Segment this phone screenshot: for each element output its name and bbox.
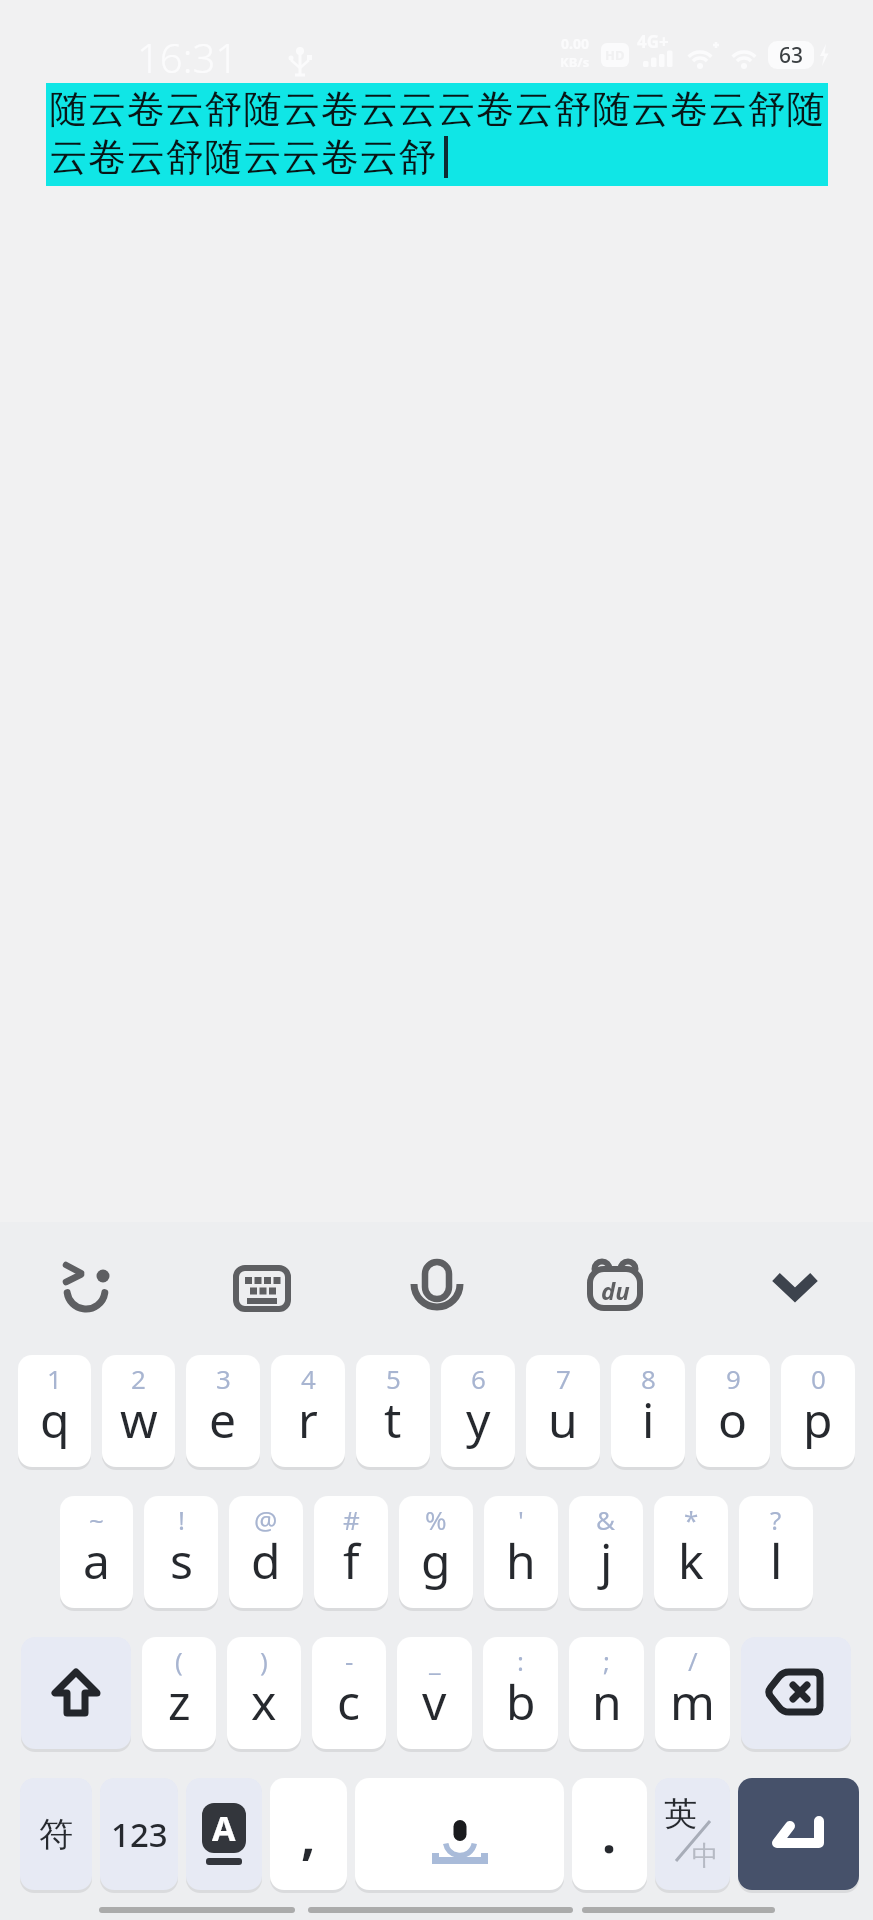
button[interactable]: 英	[655, 1778, 730, 1890]
staticText: *	[684, 1502, 699, 1537]
staticText: t	[384, 1387, 402, 1452]
button[interactable]	[59, 1260, 115, 1316]
staticText: 63	[779, 41, 804, 69]
button[interactable]: 123	[100, 1778, 178, 1890]
button[interactable]: !	[144, 1496, 218, 1608]
staticText: h	[506, 1528, 536, 1593]
staticText: (	[175, 1643, 183, 1678]
staticText: '	[518, 1502, 524, 1537]
staticText: 1	[47, 1361, 62, 1396]
staticText: !	[178, 1502, 185, 1537]
button[interactable]: 7	[526, 1355, 600, 1467]
button[interactable]: '	[484, 1496, 558, 1608]
button[interactable]: 2	[102, 1355, 175, 1467]
button[interactable]	[767, 1260, 823, 1316]
button[interactable]: du	[587, 1260, 643, 1316]
staticText: j	[600, 1528, 613, 1593]
staticText: x	[251, 1669, 277, 1734]
button[interactable]: *	[654, 1496, 728, 1608]
staticText: l	[770, 1528, 783, 1593]
staticText: 4G+	[637, 30, 669, 53]
staticText: du	[601, 1274, 630, 1307]
staticText: @	[254, 1502, 278, 1537]
button[interactable]: 4	[271, 1355, 345, 1467]
staticText: 9	[726, 1361, 741, 1396]
button[interactable]: A	[186, 1778, 262, 1890]
staticText: ~	[89, 1502, 104, 1537]
staticText: &	[596, 1502, 616, 1537]
staticText: v	[422, 1669, 447, 1734]
staticText: 2	[131, 1361, 146, 1396]
staticText: f	[343, 1528, 360, 1593]
staticText: 英	[664, 1793, 697, 1835]
staticText: c	[337, 1669, 361, 1734]
staticText: 0.00	[561, 34, 589, 53]
button[interactable]: 6	[441, 1355, 515, 1467]
button[interactable]: ;	[569, 1637, 644, 1749]
button[interactable]: 0	[781, 1355, 855, 1467]
staticText: i	[642, 1387, 655, 1452]
staticText: z	[168, 1669, 191, 1734]
button[interactable]	[234, 1260, 290, 1316]
staticText: _	[429, 1643, 441, 1678]
staticText: .	[602, 1800, 617, 1868]
button[interactable]: )	[227, 1637, 301, 1749]
button[interactable]	[741, 1637, 851, 1749]
button[interactable]: 9	[696, 1355, 770, 1467]
button[interactable]: %	[399, 1496, 473, 1608]
staticText: 123	[111, 1812, 168, 1857]
staticText: m	[670, 1669, 715, 1734]
button[interactable]: 1	[18, 1355, 91, 1467]
staticText: :	[517, 1643, 524, 1678]
staticText: r	[298, 1387, 318, 1452]
staticText: u	[548, 1387, 578, 1452]
staticText: KB/s	[560, 53, 590, 71]
staticText: 随云卷云舒随云卷云云云卷云舒随云卷云舒随	[49, 85, 825, 133]
staticText: a	[83, 1528, 110, 1593]
staticText: 7	[556, 1361, 571, 1396]
staticText: 5	[386, 1361, 401, 1396]
staticText: y	[466, 1387, 491, 1452]
staticText: g	[421, 1528, 451, 1593]
button[interactable]: &	[569, 1496, 643, 1608]
staticText: %	[425, 1502, 447, 1537]
staticText: 云卷云舒随云云卷云舒	[49, 133, 437, 181]
button[interactable]: ?	[739, 1496, 813, 1608]
staticText: k	[678, 1528, 704, 1593]
button[interactable]	[21, 1637, 131, 1749]
staticText: HD	[605, 46, 625, 64]
staticText: n	[592, 1669, 622, 1734]
button[interactable]: (	[142, 1637, 216, 1749]
staticText: 16:31	[137, 30, 239, 84]
button[interactable]: 3	[186, 1355, 260, 1467]
button[interactable]: ,	[270, 1778, 347, 1890]
staticText: 符	[39, 1813, 73, 1856]
staticText: 0	[811, 1361, 826, 1396]
button[interactable]: @	[229, 1496, 303, 1608]
button[interactable]: 符	[20, 1778, 92, 1890]
button[interactable]: -	[312, 1637, 386, 1749]
button[interactable]	[738, 1778, 859, 1890]
button[interactable]: /	[655, 1637, 730, 1749]
staticText: A	[212, 1805, 236, 1851]
staticText: p	[803, 1387, 833, 1452]
staticText: #	[343, 1502, 360, 1537]
button[interactable]: :	[483, 1637, 558, 1749]
staticText: 6	[471, 1361, 486, 1396]
staticText: -	[345, 1643, 354, 1678]
staticText: s	[170, 1528, 193, 1593]
button[interactable]: ~	[60, 1496, 133, 1608]
staticText: o	[718, 1387, 748, 1452]
staticText: ,	[301, 1802, 316, 1870]
button[interactable]: 5	[356, 1355, 430, 1467]
button[interactable]: 8	[611, 1355, 685, 1467]
button[interactable]: #	[314, 1496, 388, 1608]
staticText: w	[120, 1387, 158, 1452]
staticText: q	[40, 1387, 70, 1452]
button[interactable]	[355, 1778, 564, 1890]
button[interactable]: .	[572, 1778, 647, 1890]
staticText: /	[688, 1643, 698, 1678]
button[interactable]	[409, 1260, 465, 1316]
staticText: e	[209, 1387, 237, 1452]
button[interactable]: _	[397, 1637, 472, 1749]
